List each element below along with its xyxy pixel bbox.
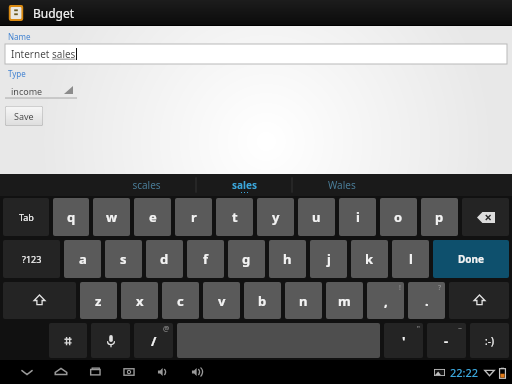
staticText: k: [365, 250, 374, 268]
button[interactable]: sales: [196, 174, 292, 196]
button[interactable]: Volume up: [180, 360, 214, 384]
button[interactable]: z: [80, 282, 117, 319]
staticText: l: [409, 250, 413, 268]
button[interactable]: w: [93, 198, 130, 236]
button[interactable]: y: [257, 198, 294, 236]
button[interactable]: f: [187, 240, 224, 278]
button[interactable]: Recent apps: [78, 360, 112, 384]
staticText: b: [258, 292, 267, 310]
staticText: z: [95, 292, 102, 310]
button[interactable]: d: [146, 240, 183, 278]
button[interactable]: Shift: [449, 282, 509, 319]
staticText: !: [399, 283, 401, 293]
button[interactable]: scales: [96, 174, 196, 196]
staticText: 22:22: [450, 365, 479, 380]
staticText: u: [312, 208, 321, 226]
staticText: ,: [384, 292, 388, 310]
staticText: scales: [132, 178, 161, 192]
button[interactable]: k: [351, 240, 388, 278]
button[interactable]: p: [421, 198, 458, 236]
staticText: Wales: [328, 178, 356, 192]
button[interactable]: /: [134, 323, 173, 358]
button[interactable]: -: [427, 323, 466, 358]
button[interactable]: Keyboard settings: [49, 323, 87, 358]
other: Battery: [499, 367, 506, 379]
staticText: Type: [8, 68, 26, 79]
staticText: q: [67, 208, 76, 226]
staticText: x: [136, 292, 144, 310]
button[interactable]: Wales: [292, 174, 392, 196]
button[interactable]: income: [5, 82, 77, 99]
staticText: Save: [14, 110, 34, 122]
button[interactable]: b: [244, 282, 281, 319]
button[interactable]: u: [298, 198, 335, 236]
staticText: i: [356, 208, 360, 226]
button[interactable]: r: [175, 198, 212, 236]
staticText: ?123: [22, 253, 42, 265]
staticText: income: [11, 85, 43, 97]
button[interactable]: v: [203, 282, 240, 319]
staticText: Budget: [33, 5, 75, 21]
button[interactable]: Shift: [3, 282, 76, 319]
staticText: .: [425, 292, 429, 310]
staticText: Tab: [19, 211, 34, 223]
other: Screenshot saved: [434, 367, 445, 378]
staticText: j: [327, 250, 331, 268]
button[interactable]: l: [392, 240, 429, 278]
button[interactable]: o: [380, 198, 417, 236]
button[interactable]: c: [162, 282, 199, 319]
button[interactable]: m: [326, 282, 363, 319]
staticText: ': [402, 332, 406, 350]
button[interactable]: .: [408, 282, 445, 319]
staticText: @: [163, 324, 170, 334]
staticText: e: [149, 208, 157, 226]
button[interactable]: t: [216, 198, 253, 236]
button[interactable]: Voice input: [91, 323, 130, 358]
button[interactable]: x: [121, 282, 158, 319]
staticText: g: [242, 250, 251, 268]
staticText: s: [120, 250, 127, 268]
button[interactable]: Back: [10, 360, 44, 384]
staticText: n: [299, 292, 308, 310]
staticText: :-): [485, 334, 494, 348]
button[interactable]: Internet: [5, 44, 507, 64]
button[interactable]: Volume down: [146, 360, 180, 384]
staticText: d: [160, 250, 169, 268]
button[interactable]: q: [53, 198, 89, 236]
button[interactable]: n: [285, 282, 322, 319]
staticText: Done: [458, 252, 485, 266]
staticText: ": [417, 324, 420, 334]
button[interactable]: ': [384, 323, 423, 358]
button[interactable]: Home: [44, 360, 78, 384]
staticText: ?: [438, 283, 442, 293]
other: Wi-Fi: [484, 367, 495, 378]
button[interactable]: i: [339, 198, 376, 236]
staticText: f: [203, 250, 209, 268]
staticText: sales: [52, 47, 76, 61]
staticText: t: [232, 208, 238, 226]
button[interactable]: ,: [367, 282, 404, 319]
staticText: -: [444, 332, 449, 350]
staticText: v: [218, 292, 226, 310]
button[interactable]: Screenshot: [112, 360, 146, 384]
button[interactable]: ?123: [3, 240, 60, 278]
button[interactable]: g: [228, 240, 265, 278]
staticText: r: [191, 208, 197, 226]
staticText: w: [106, 208, 118, 226]
staticText: Internet: [11, 47, 52, 61]
button[interactable]: Tab: [3, 198, 49, 236]
button[interactable]: :-): [470, 323, 509, 358]
staticText: Name: [8, 31, 31, 42]
staticText: c: [177, 292, 184, 310]
button[interactable]: Backspace: [462, 198, 509, 236]
button[interactable]: Save: [5, 106, 43, 126]
staticText: h: [283, 250, 292, 268]
button[interactable]: j: [310, 240, 347, 278]
button[interactable]: e: [134, 198, 171, 236]
button[interactable]: Done: [433, 240, 509, 278]
button[interactable]: s: [105, 240, 142, 278]
staticText: /: [151, 332, 157, 350]
button[interactable]: h: [269, 240, 306, 278]
button[interactable]: a: [64, 240, 101, 278]
